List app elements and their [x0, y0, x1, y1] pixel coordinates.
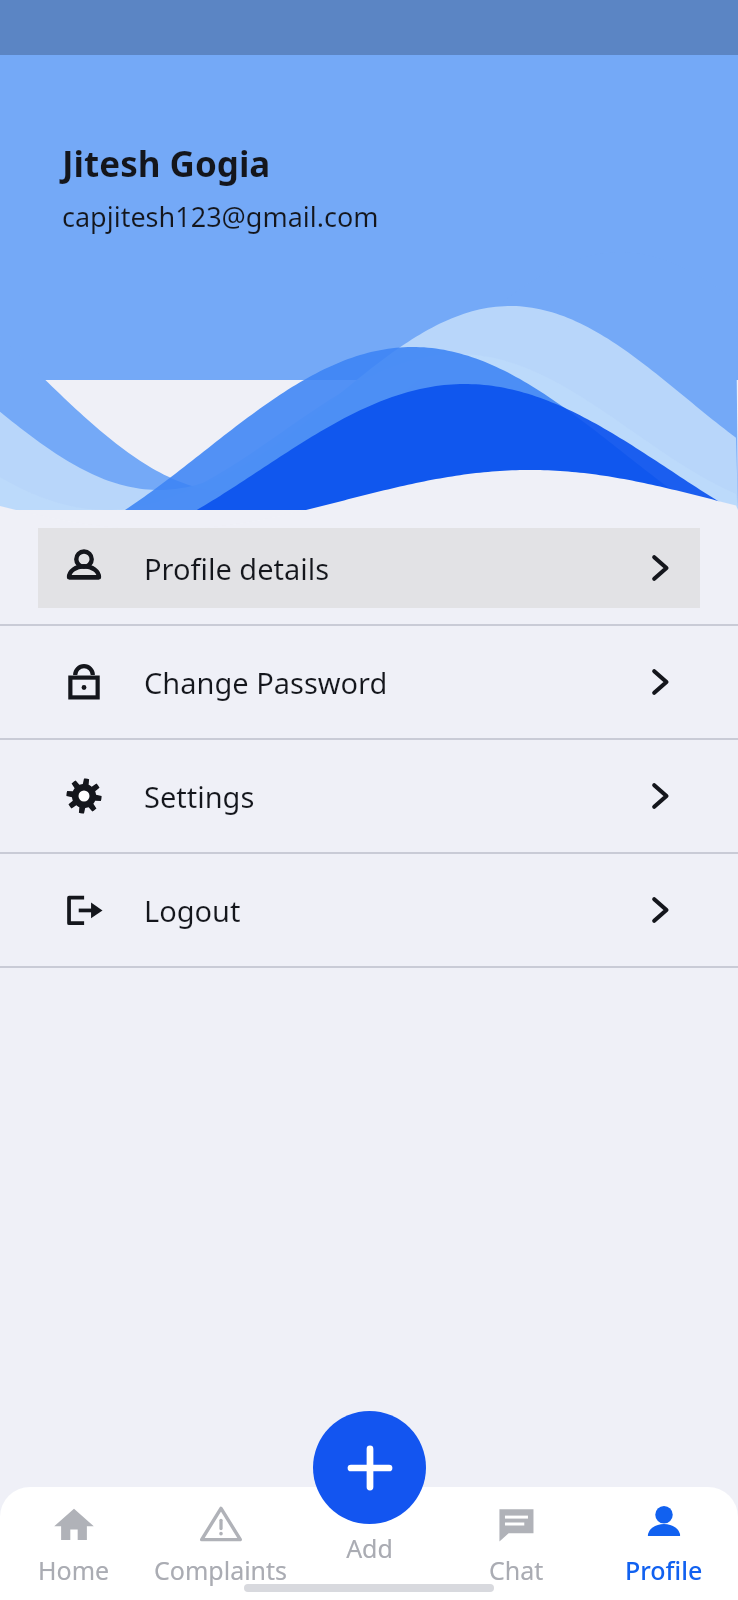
- staticText: Profile: [625, 1553, 703, 1587]
- button[interactable]: Add: [313, 1411, 426, 1524]
- staticText: Complaints: [154, 1553, 288, 1587]
- staticText: Jitesh Gogia: [62, 140, 271, 188]
- staticText: Logout: [144, 891, 241, 930]
- button[interactable]: Home: [0, 1487, 147, 1600]
- button[interactable]: Change Password: [0, 626, 738, 738]
- staticText: Chat: [489, 1553, 544, 1587]
- button[interactable]: Logout: [0, 854, 738, 966]
- staticText: Profile details: [144, 549, 330, 588]
- staticText: Home: [38, 1553, 110, 1587]
- button[interactable]: Settings: [0, 740, 738, 852]
- button[interactable]: Complaints: [147, 1487, 294, 1600]
- staticText: capjitesh123@gmail.com: [62, 198, 379, 235]
- button[interactable]: Chat: [442, 1487, 590, 1600]
- staticText: Settings: [144, 777, 255, 816]
- button[interactable]: Profile: [590, 1487, 738, 1600]
- staticText: Add: [346, 1531, 393, 1565]
- button[interactable]: Profile details: [38, 528, 700, 608]
- staticText: Change Password: [144, 663, 388, 702]
